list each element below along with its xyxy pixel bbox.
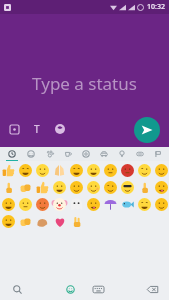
button[interactable]	[153, 179, 169, 196]
staticText: 10:32	[147, 2, 165, 12]
button[interactable]	[0, 162, 17, 179]
button[interactable]	[119, 179, 136, 196]
button[interactable]	[119, 196, 136, 213]
button[interactable]: Smileys	[21, 147, 40, 161]
button[interactable]: Food	[59, 147, 77, 161]
button[interactable]: Travel	[95, 147, 113, 161]
button[interactable]	[51, 162, 68, 179]
button[interactable]	[68, 196, 85, 213]
button[interactable]	[85, 179, 102, 196]
button[interactable]	[85, 162, 102, 179]
button[interactable]	[153, 162, 169, 179]
button[interactable]	[68, 179, 85, 196]
button[interactable]: Background colour	[52, 121, 68, 137]
button[interactable]	[0, 179, 17, 196]
button[interactable]: Flags	[149, 147, 167, 161]
button[interactable]: Font	[29, 121, 45, 137]
button[interactable]: Emoji	[61, 280, 79, 298]
button[interactable]	[153, 196, 169, 213]
button[interactable]	[34, 179, 51, 196]
button[interactable]	[17, 213, 34, 230]
button[interactable]	[34, 196, 51, 213]
button[interactable]	[102, 162, 119, 179]
button[interactable]	[0, 213, 17, 230]
button[interactable]: Recent	[2, 147, 21, 161]
button[interactable]	[119, 162, 136, 179]
button[interactable]: Send	[134, 117, 160, 143]
button[interactable]: Search emoji	[8, 280, 26, 298]
button[interactable]	[85, 196, 102, 213]
button[interactable]: Keyboard	[89, 280, 107, 298]
button[interactable]	[0, 196, 17, 213]
button[interactable]	[136, 196, 153, 213]
button[interactable]	[102, 196, 119, 213]
button[interactable]	[68, 213, 85, 230]
button[interactable]	[17, 196, 34, 213]
button[interactable]	[136, 179, 153, 196]
button[interactable]: Backspace	[143, 280, 161, 298]
button[interactable]: Symbols	[131, 147, 149, 161]
button[interactable]	[102, 179, 119, 196]
button[interactable]	[17, 179, 34, 196]
staticText: Type a status	[32, 72, 137, 95]
button[interactable]: Animals	[40, 147, 59, 161]
button[interactable]	[51, 213, 68, 230]
button[interactable]	[51, 179, 68, 196]
staticText: T	[34, 122, 40, 136]
button[interactable]: Activities	[77, 147, 95, 161]
button[interactable]: Add photo	[6, 121, 22, 137]
button[interactable]: Objects	[113, 147, 131, 161]
button[interactable]	[68, 162, 85, 179]
button[interactable]	[136, 162, 153, 179]
button[interactable]	[34, 162, 51, 179]
button[interactable]	[17, 162, 34, 179]
button[interactable]	[51, 196, 68, 213]
button[interactable]	[34, 213, 51, 230]
